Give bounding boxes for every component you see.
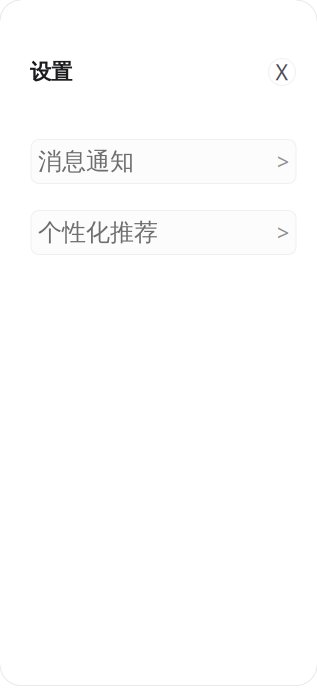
button[interactable]: Close (266, 56, 298, 88)
staticText: > (277, 147, 289, 176)
staticText: 设置 (30, 59, 72, 85)
button[interactable]: 消息通知 (31, 139, 296, 183)
staticText: 消息通知 (38, 147, 134, 176)
staticText: X (275, 58, 288, 86)
button[interactable]: 个性化推荐 (31, 210, 296, 254)
staticText: > (277, 218, 289, 247)
staticText: 个性化推荐 (38, 218, 158, 247)
